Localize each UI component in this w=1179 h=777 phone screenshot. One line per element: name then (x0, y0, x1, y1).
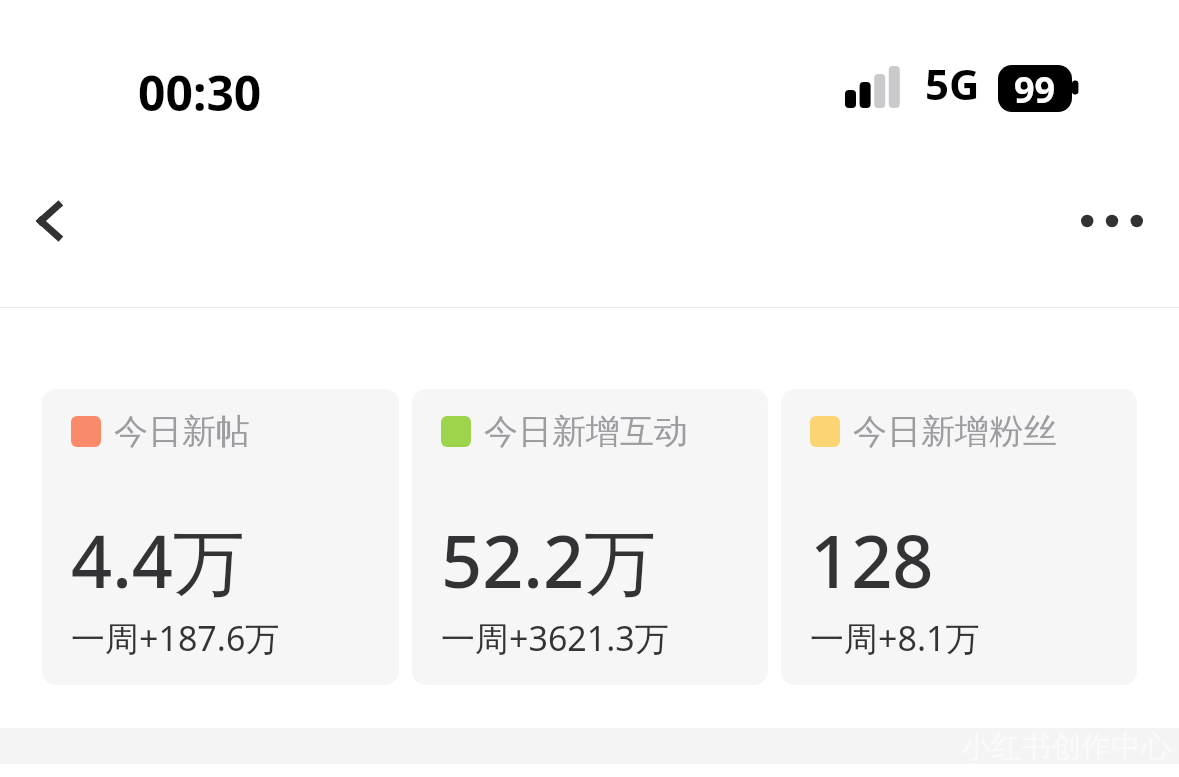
staticText: 一周+8.1万 (810, 615, 980, 661)
button[interactable]: More options (1067, 182, 1157, 260)
staticText: 99 (1014, 65, 1056, 112)
button[interactable]: Back (14, 182, 92, 260)
button[interactable]: 今日新增互动 (412, 389, 768, 685)
staticText: 00:30 (138, 60, 262, 125)
staticText: 今日新帖 (114, 410, 250, 453)
button[interactable]: 今日新增粉丝 (781, 389, 1137, 685)
staticText: 今日新增互动 (484, 410, 688, 453)
staticText: 5G (925, 55, 980, 112)
button[interactable]: 今日新帖 (42, 389, 399, 685)
staticText: 一周+3621.3万 (441, 615, 669, 661)
staticText: 今日新增粉丝 (853, 410, 1057, 453)
staticText: 一周+187.6万 (71, 615, 280, 661)
staticText: 4.4万 (71, 511, 245, 609)
staticText: 128 (810, 511, 934, 609)
staticText: 52.2万 (441, 511, 657, 609)
